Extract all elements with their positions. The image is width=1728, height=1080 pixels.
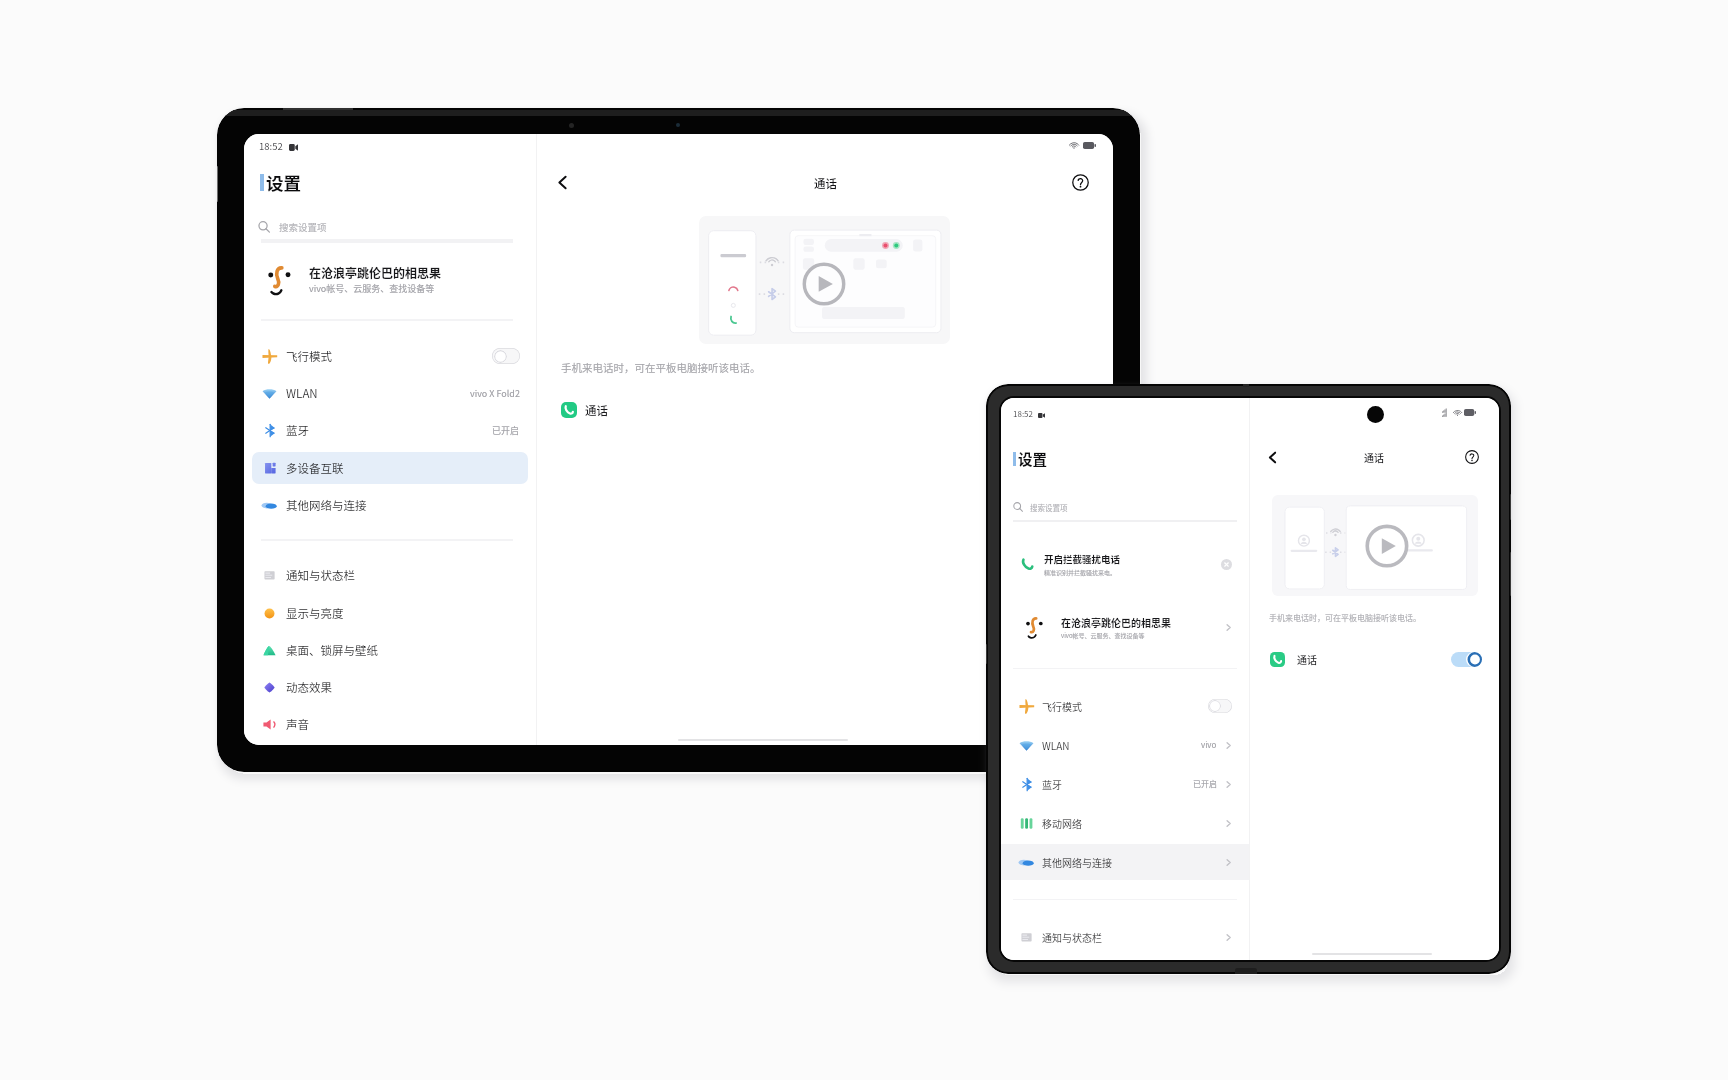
staticText: 手机来电话时，可在平板电脑接听该电话。 bbox=[1269, 612, 1421, 624]
button[interactable]: Toggle call transfer bbox=[1451, 652, 1482, 667]
staticText: 蓝牙 bbox=[286, 422, 309, 439]
staticText: 通话 bbox=[1364, 450, 1384, 464]
staticText: 通知与状态栏 bbox=[286, 567, 355, 584]
button[interactable]: 在沧浪亭跳伦巴的相思果 bbox=[1023, 607, 1232, 647]
staticText: 18:52 bbox=[1013, 408, 1033, 420]
staticText: 声音 bbox=[286, 716, 309, 733]
staticText: 通话 bbox=[814, 175, 837, 192]
button[interactable]: Help bbox=[1461, 446, 1483, 468]
button[interactable]: 显示与亮度 bbox=[252, 597, 528, 629]
button[interactable]: 开启拦截骚扰电话 bbox=[1019, 544, 1232, 584]
button[interactable]: Toggle 飞行模式 bbox=[492, 348, 520, 364]
staticText: vivo X Fold2 bbox=[470, 387, 520, 400]
button[interactable]: 通话 bbox=[1270, 646, 1482, 672]
staticText: 飞行模式 bbox=[1042, 699, 1082, 713]
button[interactable]: 通知与状态栏 bbox=[252, 559, 528, 591]
staticText: 手机来电话时，可在平板电脑接听该电话。 bbox=[561, 360, 761, 375]
staticText: 移动网络 bbox=[1042, 816, 1082, 830]
button[interactable]: Help bbox=[1068, 170, 1092, 194]
button[interactable]: 桌面、锁屏与壁纸 bbox=[252, 634, 528, 666]
staticText: 通知与状态栏 bbox=[1042, 930, 1102, 944]
staticText: 在沧浪亭跳伦巴的相思果 bbox=[1061, 615, 1171, 629]
staticText: 通话 bbox=[1297, 652, 1317, 666]
staticText: 开启拦截骚扰电话 bbox=[1044, 552, 1121, 566]
button[interactable]: 飞行模式 bbox=[252, 340, 528, 372]
button[interactable]: 搜索设置项 bbox=[1013, 497, 1235, 517]
button[interactable]: 飞行模式 bbox=[1001, 688, 1249, 724]
button[interactable]: Dismiss bbox=[1221, 559, 1232, 570]
button[interactable]: 通话 bbox=[561, 398, 761, 422]
button[interactable]: 搜索设置项 bbox=[258, 216, 522, 238]
staticText: vivo帐号、云服务、查找设备等 bbox=[1061, 631, 1145, 640]
button[interactable]: Back bbox=[550, 170, 574, 194]
button[interactable]: 通知与状态栏 bbox=[1001, 919, 1249, 955]
staticText: WLAN bbox=[1042, 738, 1070, 752]
staticText: vivo帐号、云服务、查找设备等 bbox=[309, 282, 435, 295]
button[interactable]: Toggle 飞行模式 bbox=[1208, 699, 1232, 713]
button[interactable]: WLAN bbox=[252, 377, 528, 409]
button[interactable]: 多设备互联 bbox=[252, 452, 528, 484]
staticText: 设置 bbox=[266, 170, 301, 195]
button[interactable]: 在沧浪亭跳伦巴的相思果 bbox=[264, 256, 536, 302]
staticText: 其他网络与连接 bbox=[286, 497, 367, 514]
staticText: 多设备互联 bbox=[286, 460, 344, 477]
staticText: 已开启 bbox=[1193, 778, 1217, 790]
staticText: 搜索设置项 bbox=[279, 220, 327, 234]
button[interactable]: 动态效果 bbox=[252, 671, 528, 703]
button[interactable]: 蓝牙 bbox=[252, 414, 528, 446]
button[interactable]: 蓝牙 bbox=[1001, 766, 1249, 802]
staticText: 设置 bbox=[1018, 448, 1047, 469]
staticText: 通话 bbox=[585, 402, 608, 419]
button[interactable]: 声音 bbox=[252, 708, 528, 740]
staticText: 精准识别并拦截骚扰来电。 bbox=[1044, 568, 1117, 577]
button[interactable]: 移动网络 bbox=[1001, 805, 1249, 841]
staticText: 飞行模式 bbox=[286, 348, 332, 365]
staticText: 已开启 bbox=[492, 424, 520, 437]
staticText: 在沧浪亭跳伦巴的相思果 bbox=[309, 264, 442, 281]
staticText: 显示与亮度 bbox=[286, 605, 344, 622]
staticText: 蓝牙 bbox=[1042, 777, 1062, 791]
staticText: 其他网络与连接 bbox=[1042, 855, 1112, 869]
button[interactable]: WLAN bbox=[1001, 727, 1249, 763]
button[interactable]: 其他网络与连接 bbox=[1001, 844, 1249, 880]
staticText: 18:52 bbox=[259, 139, 283, 153]
staticText: WLAN bbox=[286, 385, 318, 402]
staticText: 搜索设置项 bbox=[1030, 502, 1068, 513]
staticText: 桌面、锁屏与壁纸 bbox=[286, 642, 378, 659]
button[interactable]: Back bbox=[1261, 446, 1283, 468]
staticText: vivo bbox=[1201, 739, 1217, 751]
button[interactable]: 其他网络与连接 bbox=[252, 489, 528, 521]
staticText: 动态效果 bbox=[286, 679, 332, 696]
